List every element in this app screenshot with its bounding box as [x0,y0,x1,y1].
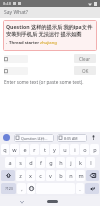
staticText: Thread starter [9,40,40,46]
button[interactable]: l [86,157,95,168]
staticText: e [23,146,27,153]
staticText: b [59,172,63,179]
staticText: v [49,172,52,179]
button[interactable]: zhujiang [40,40,57,46]
button[interactable]: Question 这样... [14,134,54,142]
staticText: l [90,159,92,166]
staticText: h [59,159,63,166]
staticText: · [6,40,8,46]
button[interactable]: Copy [4,55,28,63]
button[interactable]: Paste [4,67,28,75]
staticText: p [93,146,97,153]
button[interactable]: b [56,170,65,181]
staticText: x [29,172,32,179]
staticText: m [78,172,84,179]
staticText: Enter some text (or paste some text). [4,79,84,85]
button[interactable]: z [16,170,25,181]
button[interactable]: Emoji [27,183,35,194]
staticText: f [40,159,42,166]
button[interactable]: u [60,144,69,155]
button[interactable]: v [46,170,55,181]
button[interactable]: Google [3,134,10,141]
button[interactable]: , [17,183,26,194]
button[interactable]: s [16,157,25,168]
staticText: , [21,185,23,192]
staticText: w [12,146,17,153]
staticText: . [79,185,81,192]
staticText: q [3,146,7,153]
button[interactable]: p [90,144,99,155]
staticText: s [19,159,22,166]
button[interactable]: e [20,144,29,155]
button[interactable]: w [10,144,19,155]
button[interactable]: f [36,157,45,168]
button[interactable]: Voice input [90,134,97,141]
button[interactable]: n [66,170,75,181]
staticText: n [69,172,73,179]
staticText: OK [82,68,89,74]
staticText: k [79,159,82,166]
staticText: j [70,159,72,166]
staticText: i [74,146,76,153]
button[interactable]: t [40,144,49,155]
button[interactable]: g [46,157,55,168]
button[interactable]: k [76,157,85,168]
button[interactable]: . [76,183,84,194]
staticText: ?123 [5,186,13,191]
button[interactable]: 8:05 AM [57,134,87,142]
staticText: o [83,146,87,153]
staticText: a [8,159,12,166]
staticText: 8:48 [3,1,11,6]
button[interactable]: Home [47,200,58,203]
staticText: 8:05 AM [64,136,78,141]
button[interactable]: j [66,157,75,168]
button[interactable]: a [5,157,15,168]
button[interactable]: OK [74,66,96,75]
button[interactable]: Clear [74,54,96,63]
button[interactable]: q [1,144,9,155]
staticText: Clear [79,56,91,62]
button[interactable]: Enter [85,183,99,194]
staticText: Say What? [4,9,28,16]
staticText: Question 这样... [21,136,48,141]
staticText: r [33,146,36,153]
staticText: y [53,146,56,153]
button[interactable]: x [26,170,35,181]
staticText: g [49,159,53,166]
staticText: u [63,146,67,153]
button[interactable]: c [36,170,45,181]
button[interactable]: Back [19,199,24,204]
staticText: z [19,172,22,179]
button[interactable]: m [76,170,85,181]
button[interactable]: d [26,157,35,168]
staticText: d [29,159,33,166]
button[interactable]: y [50,144,59,155]
button[interactable]: r [30,144,39,155]
button[interactable]: Shift [1,170,15,181]
button[interactable]: Question 这样的提示后 我的ipa文件安装到手机后 无法运行 提示如图 [3,20,97,51]
staticText: t [44,146,46,153]
staticText: Question 这样的提示后 我的ipa文件安装到手机后 无法运行 提示如图 [6,23,94,37]
staticText: c [39,172,42,179]
button[interactable]: ?123 [1,183,16,194]
button[interactable]: i [70,144,79,155]
button[interactable]: h [56,157,65,168]
button[interactable]: o [80,144,89,155]
button[interactable]: Backspace [86,170,99,181]
